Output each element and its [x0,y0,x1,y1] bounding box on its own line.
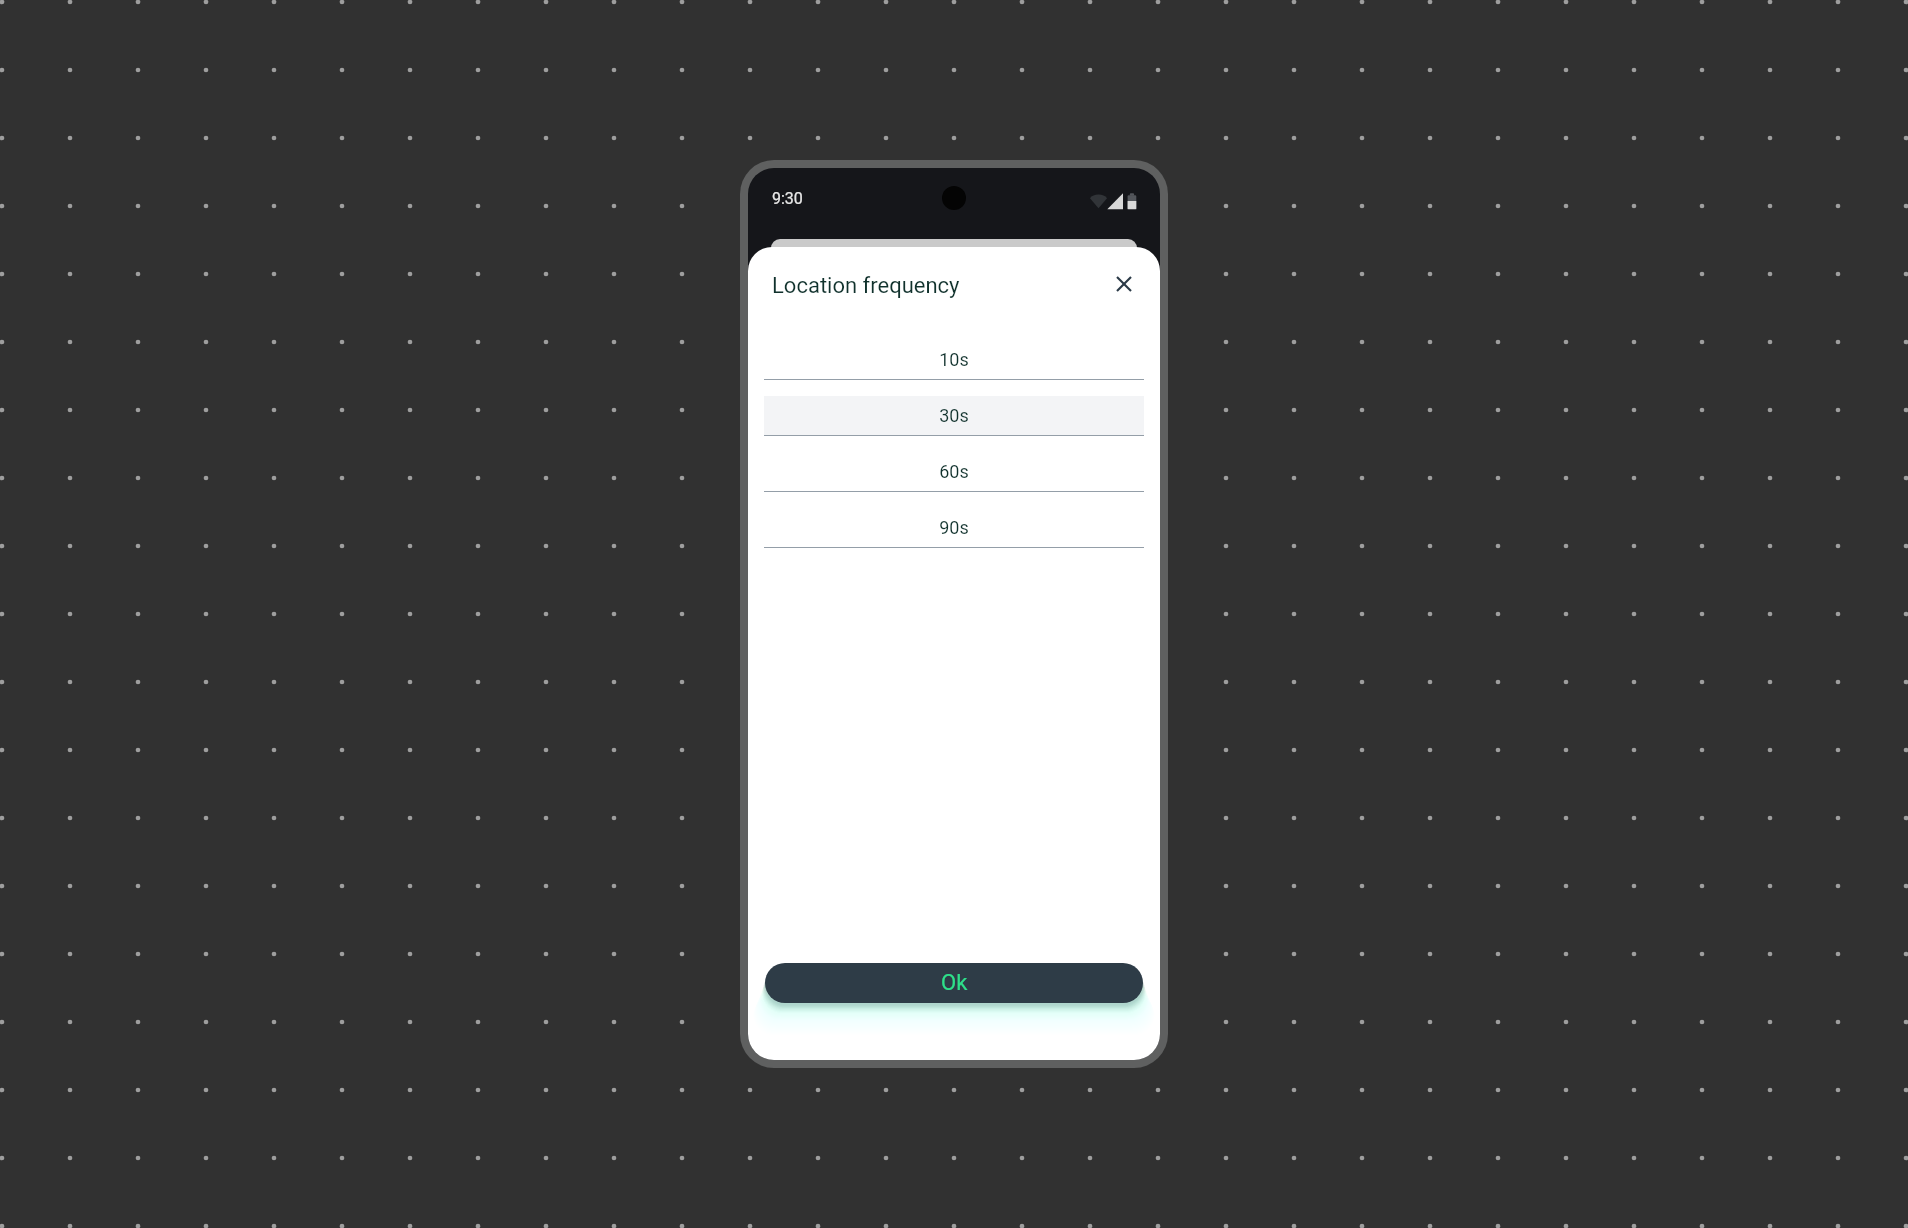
button[interactable]: Ok [765,963,1143,1003]
staticText: 30s [939,405,969,426]
button[interactable]: 60s [764,452,1144,491]
button[interactable]: 30s [764,396,1144,435]
staticText: Ok [941,970,968,996]
staticText: Location frequency [772,273,960,299]
button[interactable]: Close [1106,266,1142,302]
button[interactable]: 10s [764,340,1144,379]
staticText: 60s [939,461,969,482]
button[interactable]: 90s [764,508,1144,547]
staticText: 10s [939,349,969,370]
staticText: 90s [939,517,969,538]
staticText: 9:30 [772,189,803,208]
